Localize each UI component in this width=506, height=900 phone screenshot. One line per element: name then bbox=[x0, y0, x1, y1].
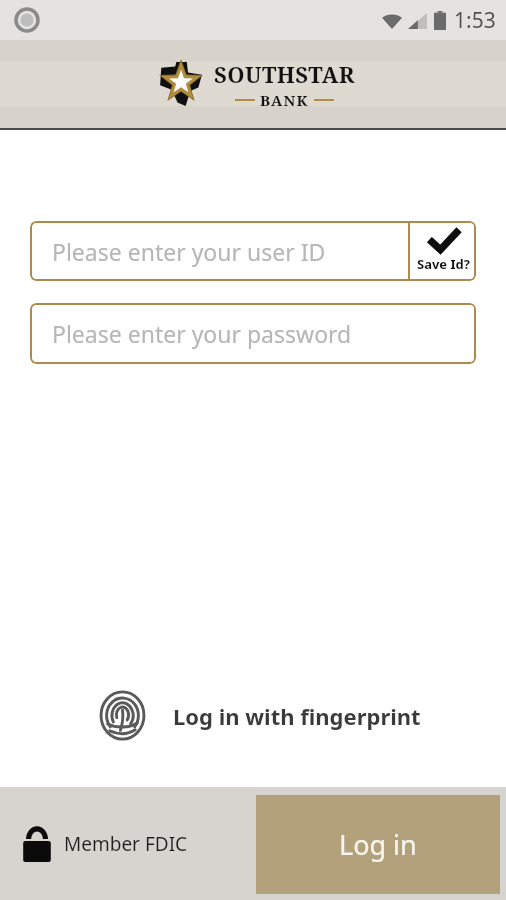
staticText: SOUTHSTAR bbox=[214, 59, 355, 89]
staticText: Member FDIC bbox=[64, 831, 188, 857]
staticText: 1:53 bbox=[454, 6, 496, 35]
button[interactable]: Member FDIC bbox=[22, 826, 188, 862]
button[interactable]: Log in bbox=[256, 795, 500, 894]
staticText: Save Id? bbox=[417, 255, 470, 273]
staticText: Log in with fingerprint bbox=[173, 701, 421, 731]
button[interactable]: Please enter your user ID bbox=[30, 221, 408, 281]
staticText: Log in bbox=[339, 826, 417, 863]
button[interactable]: Please enter your password bbox=[30, 303, 476, 364]
button[interactable]: Log in with fingerprint bbox=[0, 683, 506, 748]
staticText: Please enter your password bbox=[52, 318, 352, 349]
staticText: Please enter your user ID bbox=[52, 236, 326, 267]
button[interactable]: Save Id bbox=[410, 221, 476, 281]
staticText: BANK bbox=[260, 90, 309, 110]
